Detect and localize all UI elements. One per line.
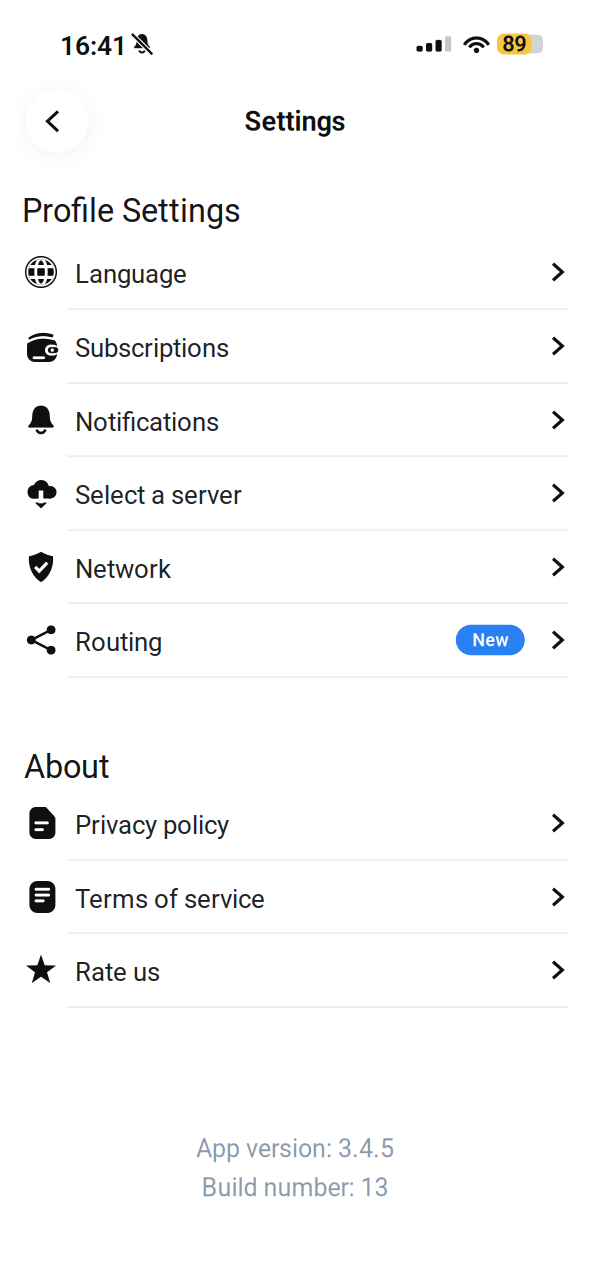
- button[interactable]: Subscriptions: [0, 309, 590, 383]
- staticText: New: [472, 629, 508, 651]
- staticText: Settings: [244, 105, 345, 137]
- staticText: Routing: [75, 627, 162, 657]
- staticText: Subscriptions: [75, 333, 229, 363]
- button[interactable]: Terms of service: [0, 860, 590, 934]
- staticText: About: [24, 748, 110, 786]
- staticText: App version: 3.4.5: [196, 1134, 394, 1163]
- staticText: Select a server: [75, 480, 242, 510]
- staticText: Notifications: [75, 407, 219, 437]
- staticText: Terms of service: [75, 884, 265, 914]
- button[interactable]: Select a server: [0, 456, 590, 530]
- staticText: Network: [75, 554, 171, 584]
- button[interactable]: Language: [0, 235, 590, 309]
- staticText: 16:41: [60, 30, 127, 61]
- staticText: Profile Settings: [22, 192, 241, 230]
- button[interactable]: Network: [0, 530, 590, 604]
- staticText: Privacy policy: [75, 810, 229, 840]
- button[interactable]: Routing: [0, 603, 590, 677]
- button[interactable]: Back: [25, 89, 88, 152]
- staticText: Rate us: [75, 957, 160, 987]
- button[interactable]: Rate us: [0, 933, 590, 1007]
- button[interactable]: Privacy policy: [0, 786, 590, 860]
- staticText: Language: [75, 259, 187, 289]
- staticText: Build number: 13: [201, 1173, 388, 1202]
- staticText: 89: [502, 31, 526, 57]
- button[interactable]: Notifications: [0, 383, 590, 457]
